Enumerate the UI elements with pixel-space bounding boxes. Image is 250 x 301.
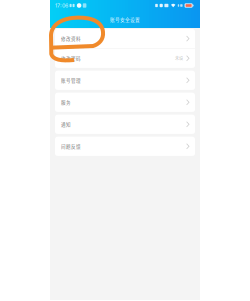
staticText: 修改资料: [61, 35, 81, 42]
staticText: 未设: [175, 55, 183, 61]
staticText: 账号安全设置: [110, 16, 140, 23]
staticText: 通知: [61, 121, 71, 128]
staticText: 账号管理: [61, 77, 81, 84]
staticText: 问题反馈: [61, 143, 81, 150]
button[interactable]: 修改密码: [55, 49, 195, 68]
staticText: 服务: [61, 99, 71, 106]
staticText: 修改密码: [61, 55, 81, 62]
button[interactable]: 账号管理: [55, 71, 195, 90]
button[interactable]: 问题反馈: [55, 137, 195, 156]
button[interactable]: 服务: [55, 93, 195, 112]
staticText: 17:06: [55, 2, 68, 9]
button[interactable]: 修改资料: [55, 29, 195, 48]
button[interactable]: 通知: [55, 115, 195, 134]
